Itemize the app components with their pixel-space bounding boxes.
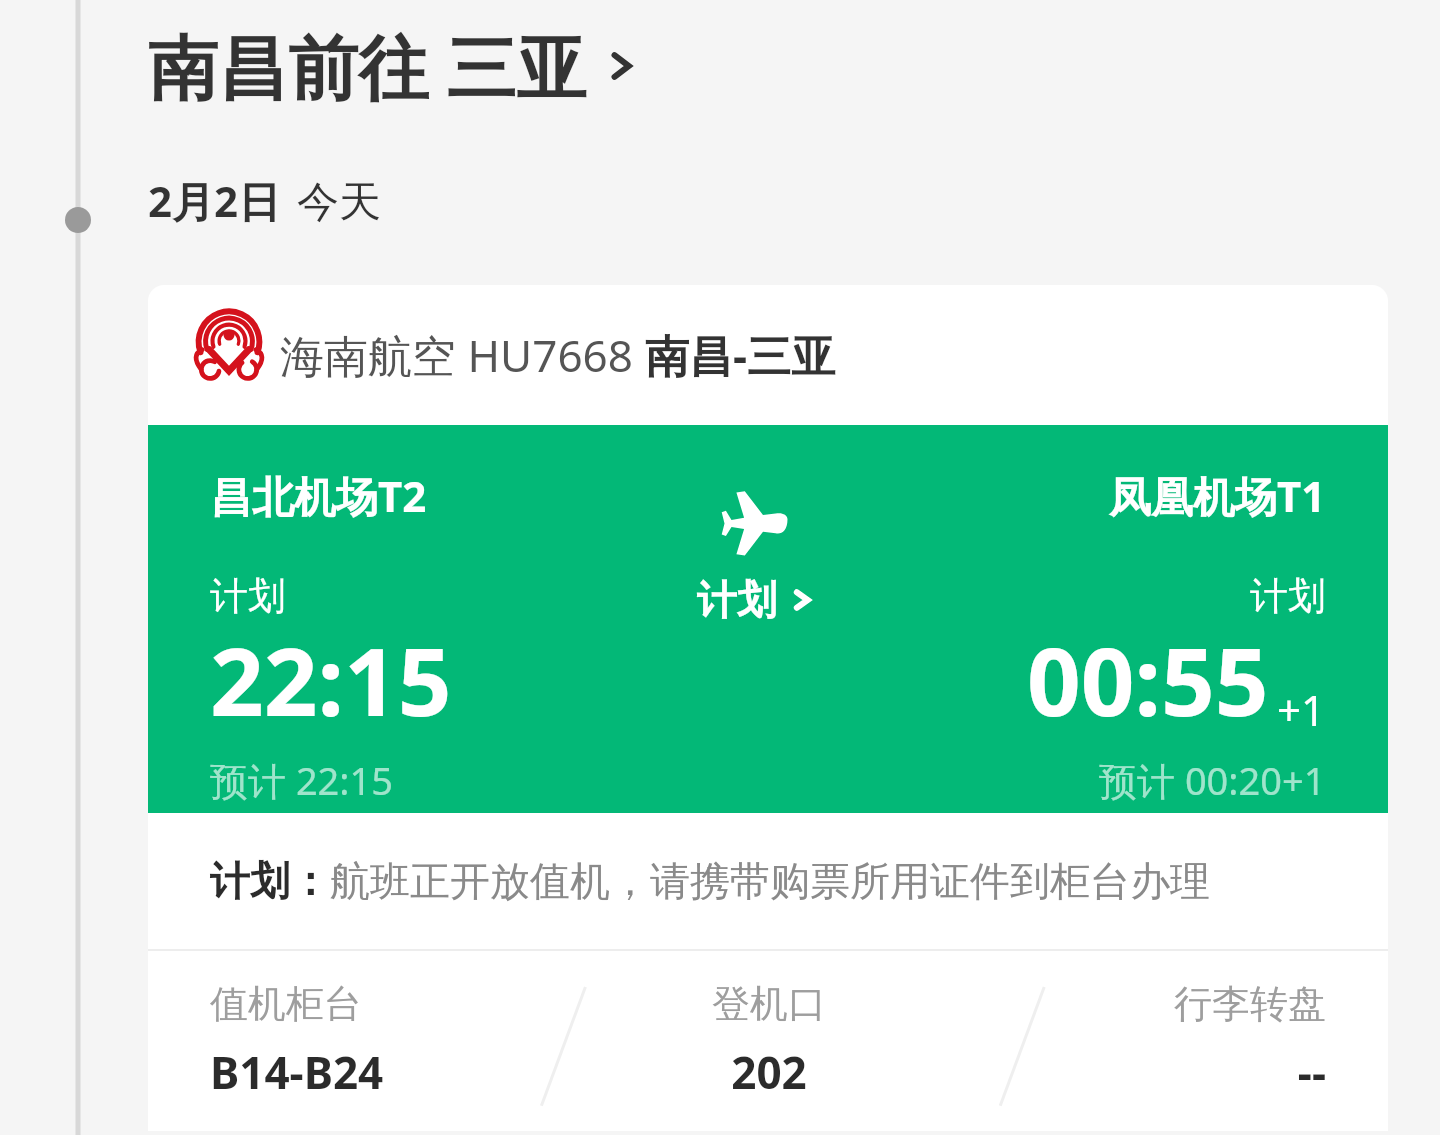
staticText: 202 xyxy=(731,1042,807,1102)
staticText: 行李转盘 xyxy=(1174,980,1326,1028)
staticText: 值机柜台 xyxy=(210,980,362,1028)
button[interactable]: 昌北机场T2 xyxy=(148,425,1388,813)
staticText: 计划 xyxy=(1250,572,1326,620)
staticText: 2月2日 xyxy=(148,172,281,229)
button[interactable]: 南昌前往 三亚 xyxy=(148,18,639,114)
staticText: 海南航空 HU7668 xyxy=(280,325,645,385)
button[interactable]: 计划： xyxy=(148,813,1388,949)
staticText: -- xyxy=(1297,1042,1326,1102)
staticText: 计划 xyxy=(697,575,777,625)
button[interactable]: 海南航空 HU7668 xyxy=(148,285,1388,425)
staticText: 22:15 xyxy=(210,616,452,744)
staticText: 预计 00:20+1 xyxy=(1099,754,1326,806)
staticText: 今天 xyxy=(297,176,381,229)
staticText: 计划： xyxy=(210,856,330,906)
staticText: 00:55 xyxy=(1027,616,1269,744)
staticText: 凤凰机场T1 xyxy=(1109,467,1326,524)
staticText: 计划 xyxy=(210,572,286,620)
staticText: 南昌-三亚 xyxy=(645,325,836,385)
staticText: 南昌前往 三亚 xyxy=(148,18,587,114)
button[interactable]: 值机柜台 xyxy=(148,951,1388,1131)
staticText: 昌北机场T2 xyxy=(210,467,427,524)
staticText: 航班正开放值机，请携带购票所用证件到柜台办理 xyxy=(330,856,1210,906)
staticText: +1 xyxy=(1277,681,1326,738)
staticText: B14-B24 xyxy=(210,1042,384,1102)
button[interactable]: 航班状态 计划 xyxy=(697,487,815,625)
staticText: 登机口 xyxy=(712,980,826,1028)
staticText: 预计 22:15 xyxy=(210,754,394,806)
